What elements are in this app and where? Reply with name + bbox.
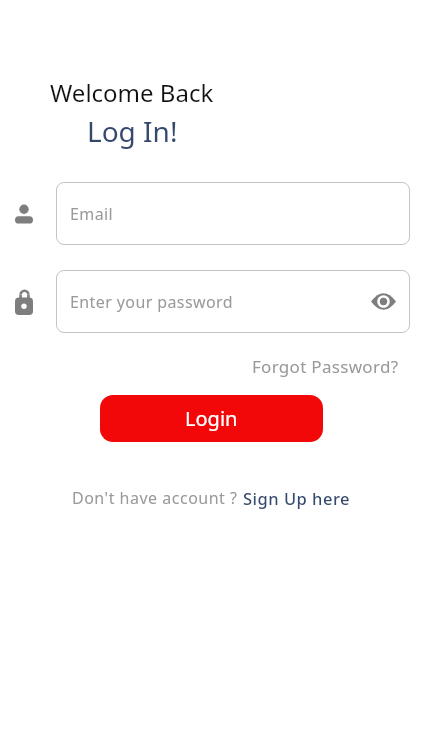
button[interactable]: Enter your password	[56, 270, 410, 333]
button[interactable]: Don't have account ?	[72, 487, 351, 509]
staticText: Email	[70, 203, 114, 225]
staticText: Welcome Back	[50, 76, 214, 109]
staticText: Login	[185, 405, 238, 432]
button[interactable]: Forgot Password?	[252, 355, 399, 378]
button[interactable]: Login	[100, 395, 323, 442]
button[interactable]	[371, 293, 396, 310]
button[interactable]: Email	[56, 182, 410, 245]
staticText: Log In!	[87, 112, 178, 150]
staticText: Sign Up here	[243, 487, 351, 509]
staticText: Don't have account ?	[72, 487, 243, 509]
staticText: Enter your password	[70, 291, 233, 313]
